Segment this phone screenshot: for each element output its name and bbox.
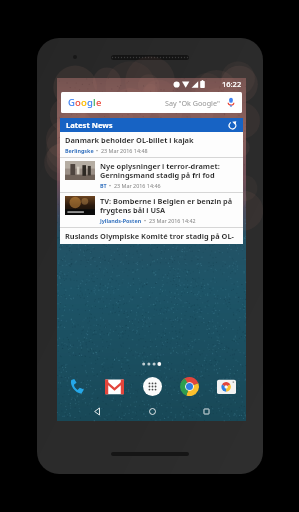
staticText: Latest News — [66, 120, 113, 130]
staticText: g — [87, 96, 93, 109]
button[interactable]: Nye oplysninger i terror-dramet: Gerning… — [60, 158, 243, 192]
staticText: • — [144, 217, 147, 224]
button[interactable]: Recents — [191, 403, 221, 419]
staticText: Say "Ok Google" — [165, 98, 220, 108]
staticText: Berlingske — [65, 147, 94, 154]
staticText: Nye oplysninger i terror-dramet: Gerning… — [100, 161, 220, 180]
button[interactable]: Ruslands Olympiske Komité tror stadig på… — [60, 228, 243, 244]
other: Voice search — [227, 97, 235, 108]
button[interactable]: Chrome — [177, 374, 201, 398]
staticText: o — [75, 96, 81, 109]
button[interactable]: Latest News — [60, 118, 243, 132]
staticText: 23 Mar 2016 14:42 — [149, 217, 196, 224]
staticText: e — [96, 96, 102, 109]
staticText: • — [109, 182, 112, 189]
staticText: o — [81, 96, 87, 109]
staticText: G — [68, 96, 75, 109]
button[interactable]: Camera — [214, 374, 238, 398]
staticText: 16:22 — [222, 79, 242, 89]
button[interactable]: Danmark beholder OL-billet i kajak — [60, 132, 243, 157]
staticText: TV: Bomberne i Belgien er benzin på fryg… — [100, 196, 233, 215]
staticText: Jyllands-Posten — [100, 217, 142, 224]
button[interactable]: Phone — [65, 374, 89, 398]
button[interactable]: G — [61, 92, 242, 113]
button[interactable]: Home — [137, 403, 167, 419]
button[interactable]: Gmail — [102, 374, 126, 398]
other: Refresh — [228, 121, 237, 130]
button[interactable]: TV: Bomberne i Belgien er benzin på fryg… — [60, 193, 243, 227]
staticText: 23 Mar 2016 14:46 — [114, 182, 161, 189]
staticText: • — [96, 147, 99, 154]
staticText: Ruslands Olympiske Komité tror stadig på… — [65, 231, 234, 241]
staticText: Danmark beholder OL-billet i kajak — [65, 135, 194, 145]
button[interactable]: All apps — [140, 374, 164, 398]
staticText: 23 Mar 2016 14:48 — [101, 147, 148, 154]
staticText: BT — [100, 182, 107, 189]
button[interactable]: Back — [82, 403, 112, 419]
staticText: l — [93, 96, 96, 109]
